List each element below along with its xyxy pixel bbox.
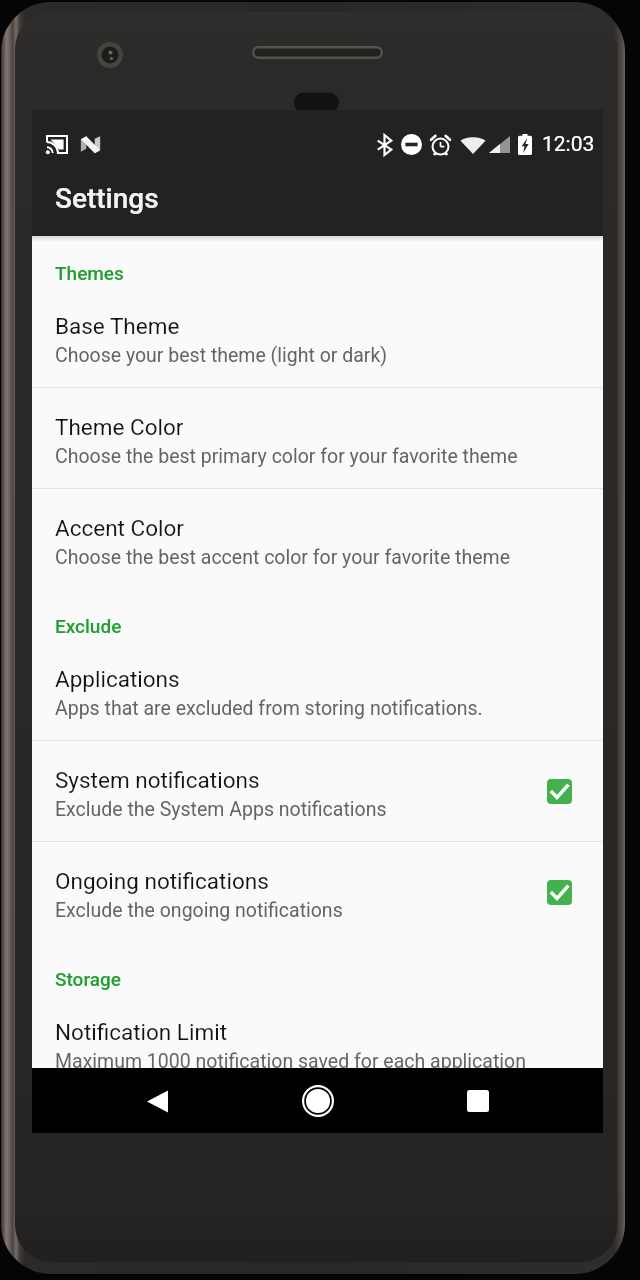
staticText: Choose the best accent color for your fa…	[55, 546, 510, 569]
button[interactable]: Checked	[547, 880, 572, 905]
staticText: Theme Color	[55, 414, 184, 440]
staticText: Accent Color	[55, 515, 184, 541]
button[interactable]: Base Theme	[32, 287, 603, 387]
staticText: Base Theme	[55, 313, 180, 339]
button[interactable]: Checked	[547, 779, 572, 804]
button[interactable]: Theme Color	[32, 388, 603, 488]
staticText: Maximum 1000 notification saved for each…	[55, 1050, 526, 1073]
staticText: Exclude the System Apps notifications	[55, 798, 387, 821]
staticText: Choose the best primary color for your f…	[55, 445, 518, 468]
button[interactable]: Notification Limit	[32, 993, 603, 1068]
staticText: System notifications	[55, 767, 260, 793]
staticText: Applications	[55, 666, 180, 692]
staticText: 12:03	[542, 132, 595, 157]
staticText: Notification Limit	[55, 1019, 228, 1045]
staticText: Ongoing notifications	[55, 868, 269, 894]
button[interactable]: Accent Color	[32, 489, 603, 589]
button[interactable]: Applications	[32, 640, 603, 740]
staticText: Exclude the ongoing notifications	[55, 899, 343, 922]
button[interactable]: Home	[289, 1072, 347, 1130]
staticText: Exclude	[55, 615, 122, 637]
staticText: Choose your best theme (light or dark)	[55, 344, 388, 367]
button[interactable]: Ongoing notifications	[32, 842, 603, 942]
button[interactable]: Recents	[449, 1072, 507, 1130]
button[interactable]: System notifications	[32, 741, 603, 841]
staticText: Settings	[55, 182, 159, 215]
staticText: Themes	[55, 262, 124, 284]
button[interactable]: Back	[128, 1072, 186, 1130]
staticText: Apps that are excluded from storing noti…	[55, 697, 483, 720]
staticText: Storage	[55, 968, 121, 990]
